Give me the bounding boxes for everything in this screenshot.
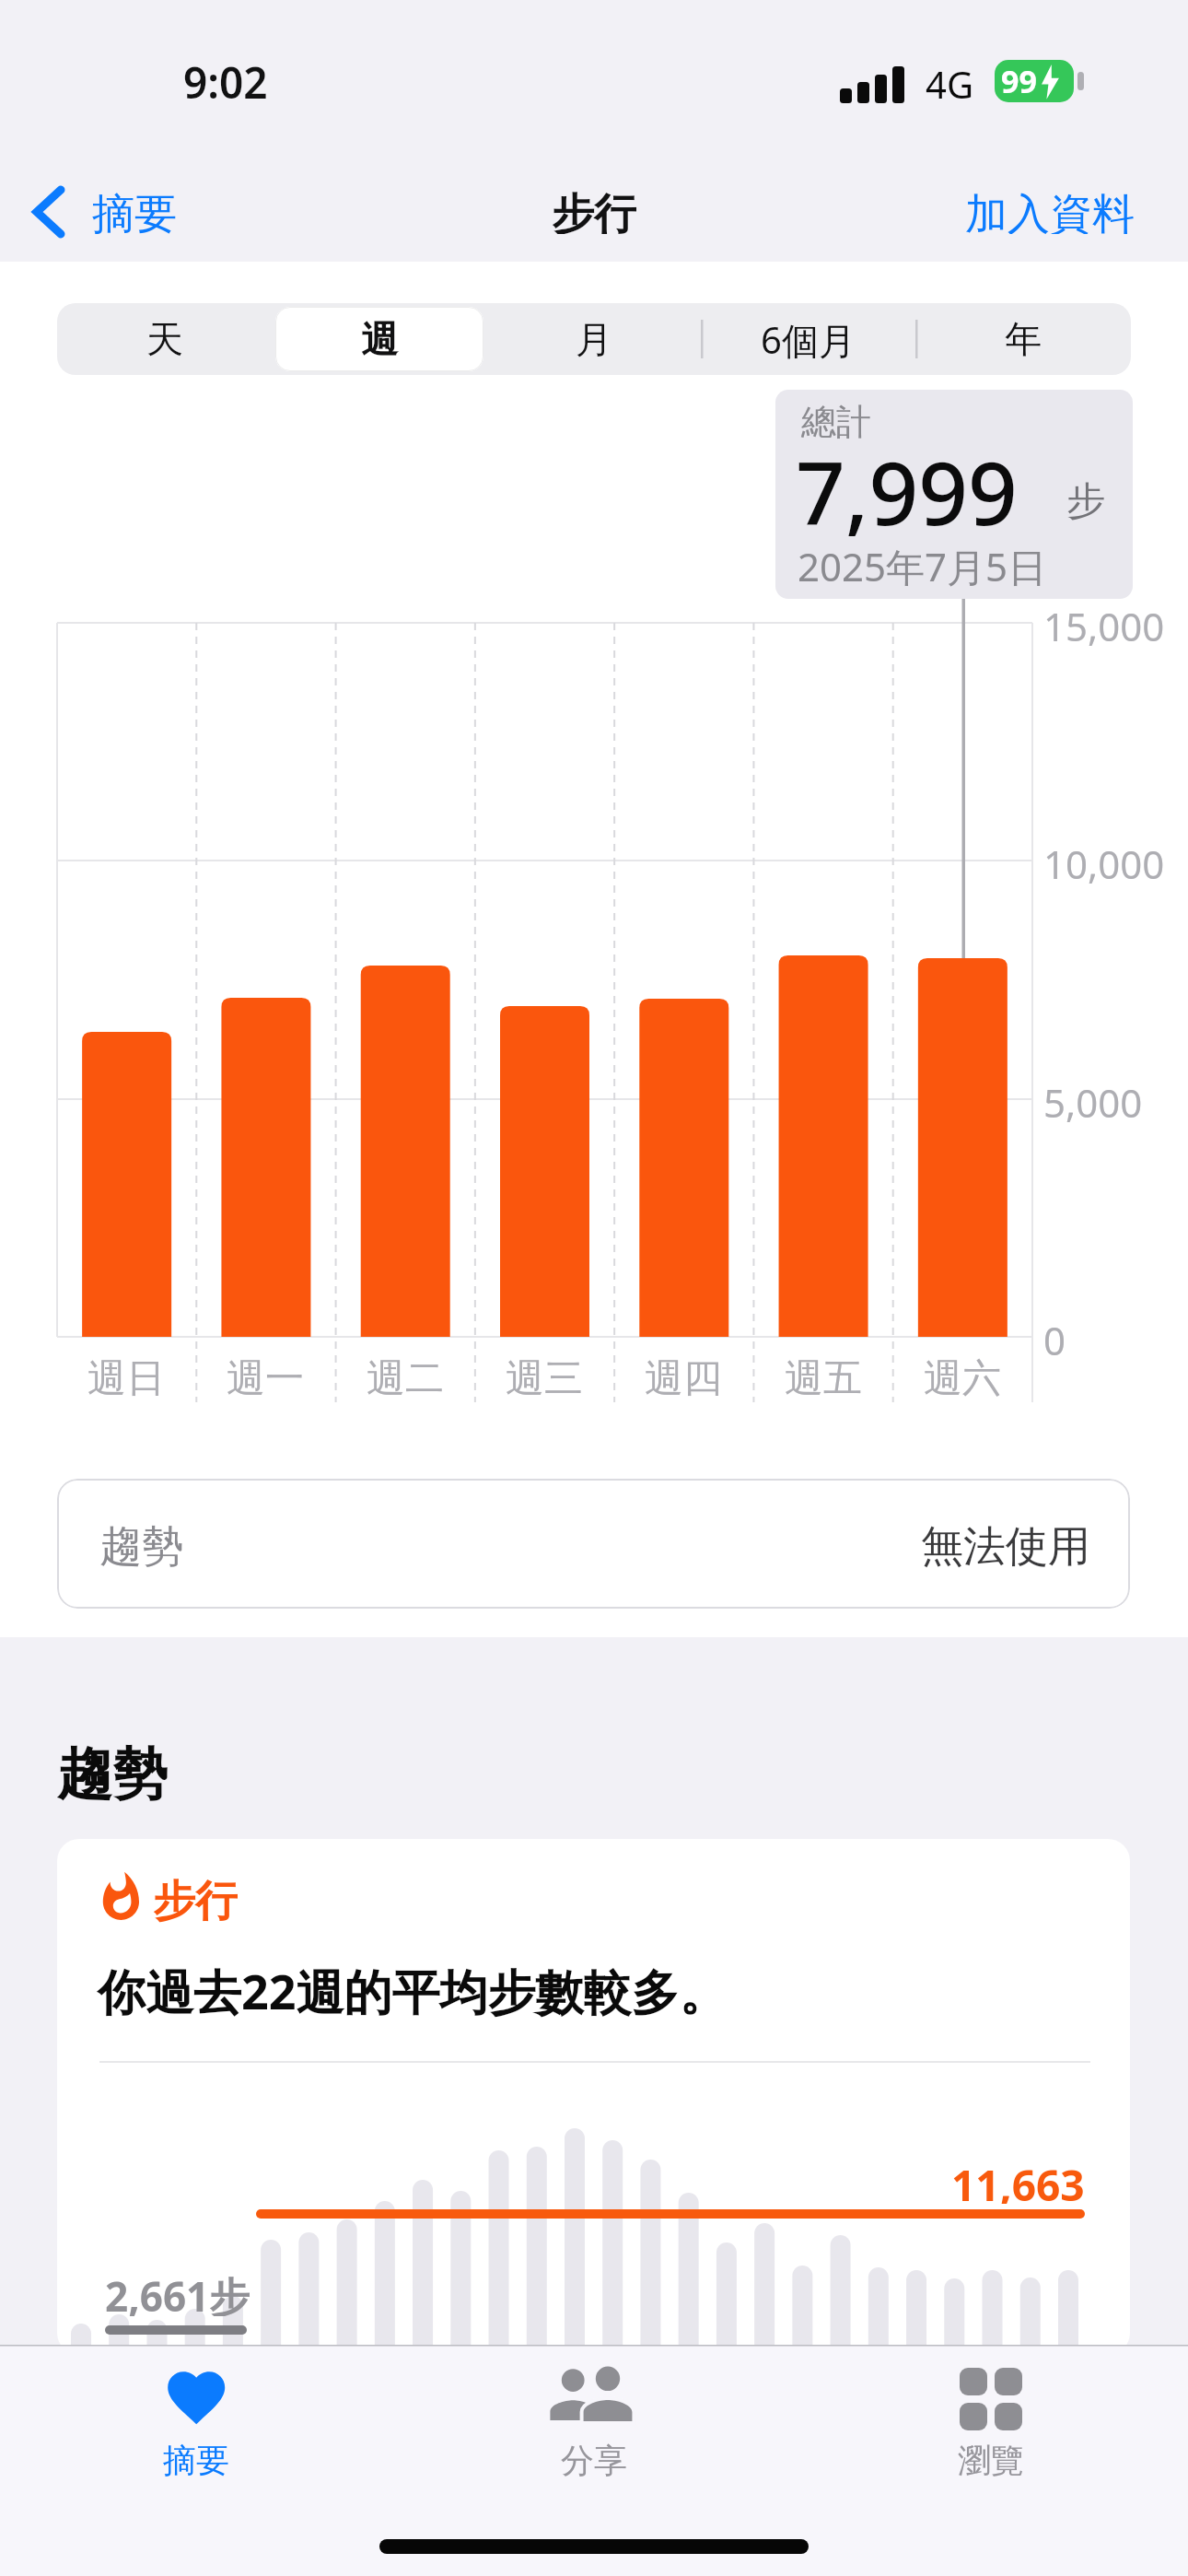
- button[interactable]: 分享: [502, 2437, 686, 2483]
- staticText: 年: [1005, 316, 1042, 362]
- button[interactable]: 6個月: [701, 303, 915, 375]
- staticText: 月: [576, 316, 612, 362]
- staticText: 週五: [785, 1354, 862, 1402]
- staticText: 15,000: [1043, 600, 1165, 646]
- staticText: 天: [146, 316, 183, 362]
- staticText: 摘要: [163, 2440, 229, 2481]
- button[interactable]: 月: [486, 303, 701, 375]
- staticText: 週: [361, 316, 398, 362]
- staticText: 週一: [227, 1354, 304, 1402]
- staticText: 步行: [552, 188, 636, 234]
- staticText: 7,999: [796, 433, 1018, 544]
- staticText: 步行: [153, 1875, 238, 1923]
- button[interactable]: 瀏覽: [899, 2437, 1083, 2483]
- staticText: 步: [1066, 477, 1105, 525]
- staticText: 10,000: [1043, 837, 1165, 884]
- staticText: 總計: [801, 400, 871, 444]
- staticText: 週四: [645, 1354, 722, 1402]
- staticText: 9:02: [183, 53, 268, 107]
- staticText: 你過去22週的平均步數較多。: [98, 1958, 728, 2023]
- staticText: 5,000: [1043, 1076, 1143, 1122]
- staticText: 99: [1001, 60, 1037, 102]
- staticText: 週三: [506, 1354, 583, 1402]
- staticText: 11,663: [951, 2156, 1085, 2204]
- button[interactable]: 摘要: [104, 2437, 288, 2483]
- button[interactable]: 年: [915, 303, 1130, 375]
- button[interactable]: [28, 181, 193, 241]
- button[interactable]: 加入資料: [856, 188, 1135, 234]
- staticText: 瀏覽: [958, 2440, 1024, 2481]
- staticText: 趨勢: [57, 1739, 168, 1806]
- button[interactable]: [57, 1839, 1130, 2355]
- staticText: 分享: [561, 2440, 627, 2481]
- staticText: 週二: [367, 1354, 444, 1402]
- button[interactable]: 週: [272, 303, 486, 375]
- button[interactable]: [57, 1479, 1130, 1609]
- button[interactable]: 天: [57, 303, 272, 375]
- staticText: 4G: [926, 59, 973, 103]
- staticText: 無法使用: [921, 1520, 1090, 1568]
- staticText: 週日: [87, 1354, 165, 1402]
- staticText: 週六: [924, 1354, 1001, 1402]
- staticText: 趨勢: [99, 1520, 184, 1568]
- staticText: 2025年7月5日: [798, 540, 1047, 588]
- staticText: 摘要: [92, 188, 177, 234]
- staticText: 2,661步: [105, 2268, 250, 2316]
- staticText: 加入資料: [965, 188, 1135, 234]
- staticText: 0: [1043, 1314, 1066, 1360]
- staticText: 6個月: [761, 314, 856, 365]
